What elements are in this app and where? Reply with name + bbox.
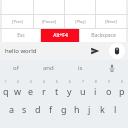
button[interactable]: h <box>70 100 83 128</box>
button[interactable]: 6 <box>63 76 76 100</box>
staticText: [Pause] <box>42 19 56 24</box>
button[interactable]: 0 <box>115 76 128 100</box>
staticText: 5 <box>56 80 58 84</box>
staticText: of <box>13 64 19 72</box>
staticText: y <box>67 85 72 97</box>
button[interactable]: d <box>31 100 44 128</box>
staticText: is <box>78 64 83 72</box>
staticText: q <box>3 85 9 97</box>
staticText: o <box>106 85 112 97</box>
staticText: h <box>74 103 80 115</box>
staticText: s <box>22 103 27 115</box>
button[interactable]: [Prev] <box>2 15 33 28</box>
staticText: r <box>42 85 46 97</box>
staticText: 1 <box>5 80 7 84</box>
button[interactable]: 1 <box>0 76 12 100</box>
staticText: i <box>94 85 97 97</box>
staticText: 0 <box>121 80 123 84</box>
button[interactable]: g <box>57 100 70 128</box>
staticText: d <box>35 103 41 115</box>
staticText: 4 <box>43 80 45 84</box>
staticText: p <box>119 85 125 97</box>
button[interactable]: Send <box>88 44 102 58</box>
button[interactable]: Esc <box>2 29 40 42</box>
staticText: t <box>55 85 59 97</box>
staticText: 6 <box>69 80 71 84</box>
staticText: a <box>9 103 15 115</box>
staticText: k <box>100 103 105 115</box>
button[interactable]: Trackpad <box>109 43 125 59</box>
button[interactable]: 3 <box>24 76 37 100</box>
button[interactable]: l <box>109 100 122 128</box>
button[interactable]: 4 <box>37 76 50 100</box>
staticText: Esc <box>17 32 25 39</box>
staticText: 2 <box>17 80 19 84</box>
button[interactable]: s <box>18 100 31 128</box>
staticText: 8 <box>95 80 97 84</box>
button[interactable]: [Next] <box>96 15 126 28</box>
button[interactable]: of <box>0 60 32 76</box>
staticText: [Prev] <box>12 19 23 24</box>
staticText: g <box>61 103 67 115</box>
staticText: and <box>43 64 54 72</box>
staticText: w <box>14 85 22 97</box>
staticText: u <box>80 85 86 97</box>
button[interactable]: 2 <box>12 76 24 100</box>
staticText: Backspace <box>91 32 116 39</box>
staticText: [Next] <box>105 19 117 24</box>
staticText: 3 <box>30 80 32 84</box>
button[interactable]: and <box>32 60 64 76</box>
button[interactable]: j <box>83 100 96 128</box>
button[interactable]: Alt+F4 <box>41 29 79 42</box>
staticText: hello world <box>5 47 37 55</box>
button[interactable]: is <box>64 60 96 76</box>
button[interactable]: 8 <box>89 76 102 100</box>
staticText: 9 <box>108 80 110 84</box>
staticText: j <box>88 103 91 115</box>
button[interactable]: 5 <box>50 76 63 100</box>
button[interactable]: 7 <box>76 76 89 100</box>
staticText: e <box>28 85 34 97</box>
button[interactable]: a <box>5 100 18 128</box>
staticText: [Play] <box>75 19 86 24</box>
staticText: 7 <box>82 80 84 84</box>
staticText: Alt+F4 <box>53 32 68 39</box>
staticText: l <box>114 103 117 115</box>
button[interactable]: Backspace <box>80 29 126 42</box>
staticText: f <box>49 103 53 115</box>
button[interactable]: k <box>96 100 109 128</box>
button[interactable]: Voice input <box>96 60 128 76</box>
button[interactable]: 9 <box>102 76 115 100</box>
button[interactable]: [Play] <box>65 15 95 28</box>
button[interactable]: f <box>44 100 57 128</box>
button[interactable]: [Pause] <box>34 15 64 28</box>
